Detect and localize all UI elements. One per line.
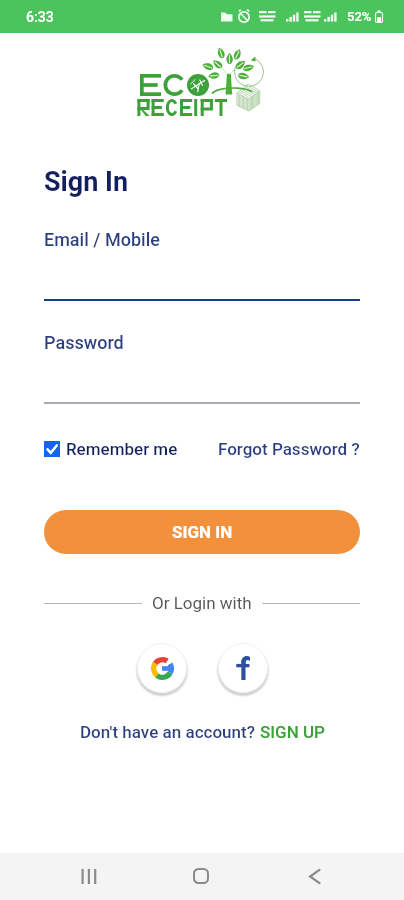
button[interactable]: Sign in with Facebook: [218, 643, 268, 693]
staticText: Email / Mobile: [44, 229, 160, 250]
button[interactable]: SIGN IN: [44, 510, 360, 554]
button[interactable]: Sign in with Google: [137, 643, 187, 693]
button[interactable]: Home: [177, 858, 225, 894]
staticText: 52%: [347, 9, 372, 24]
staticText: Or Login with: [152, 593, 252, 613]
button[interactable]: Don't have an account?: [44, 722, 360, 742]
staticText: Remember me: [66, 439, 178, 459]
staticText: Don't have an account?: [80, 722, 260, 742]
button[interactable]: Remember me: [44, 439, 178, 459]
staticText: SIGN IN: [172, 522, 233, 542]
button[interactable]: Back: [290, 858, 338, 894]
staticText: Sign In: [44, 166, 129, 198]
staticText: 6:33: [26, 9, 54, 25]
staticText: Password: [44, 332, 124, 353]
button[interactable]: Recent apps: [64, 858, 112, 894]
button[interactable]: Forgot Password ?: [218, 439, 360, 459]
staticText: SIGN UP: [260, 722, 325, 742]
